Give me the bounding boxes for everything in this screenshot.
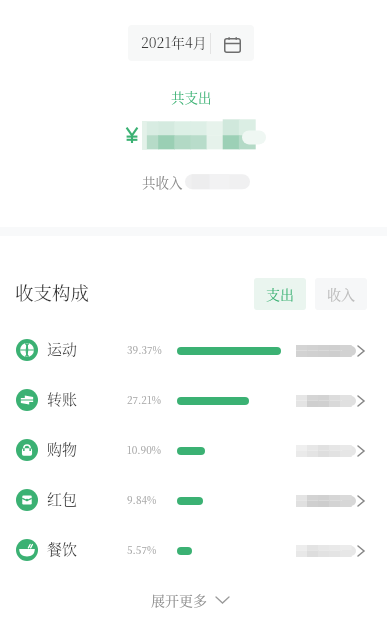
button[interactable]: 购物: [0, 426, 387, 476]
staticText: 转账: [47, 388, 78, 410]
button[interactable]: 2021年4月: [128, 25, 254, 61]
button[interactable]: 红包: [0, 476, 387, 526]
staticText: 5.57%: [127, 542, 157, 556]
staticText: 餐饮: [47, 538, 78, 560]
button[interactable]: 转账: [0, 376, 387, 426]
staticText: 共支出: [171, 87, 212, 106]
staticText: 购物: [47, 438, 78, 460]
staticText: 27.21%: [127, 392, 161, 406]
staticText: 收入: [327, 284, 355, 304]
staticText: 10.90%: [127, 442, 161, 456]
staticText: 共收入: [142, 172, 183, 191]
staticText: 收支构成: [15, 279, 90, 306]
staticText: 展开更多: [151, 590, 207, 610]
button[interactable]: 餐饮: [0, 526, 387, 576]
button[interactable]: 展开更多: [151, 588, 229, 612]
button[interactable]: 收入: [315, 278, 367, 310]
button[interactable]: 运动: [0, 326, 387, 376]
button[interactable]: 支出: [254, 278, 306, 310]
staticText: 39.37%: [127, 342, 162, 356]
staticText: 红包: [47, 488, 78, 510]
staticText: 支出: [266, 284, 294, 304]
staticText: 运动: [47, 338, 78, 360]
staticText: 2021年4月: [141, 32, 207, 52]
staticText: 9.84%: [127, 492, 157, 506]
